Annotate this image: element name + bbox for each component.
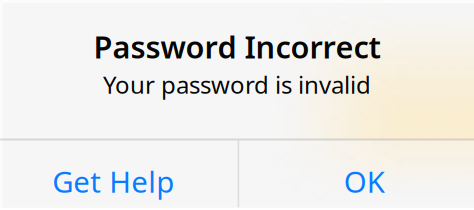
button[interactable]: Get Help (0, 140, 238, 210)
staticText: OK (344, 162, 385, 201)
staticText: Password Incorrect (93, 26, 380, 67)
button[interactable]: OK (238, 140, 474, 210)
staticText: Get Help (52, 162, 174, 201)
staticText: Your password is invalid (103, 69, 371, 100)
